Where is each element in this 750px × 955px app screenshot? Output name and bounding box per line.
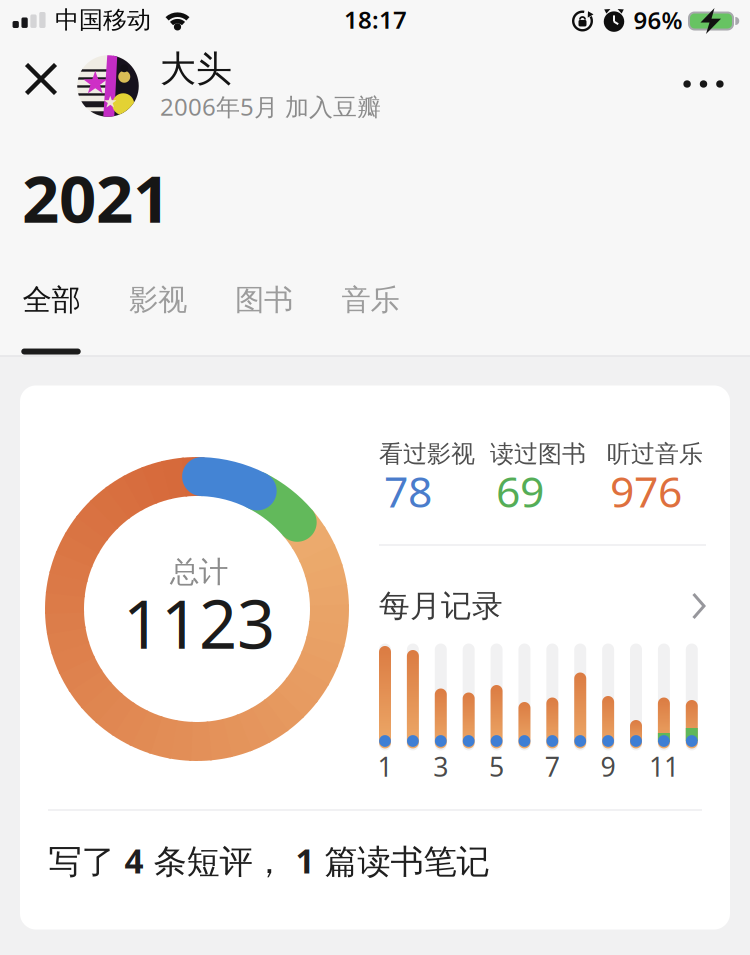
staticText: 读过图书	[490, 439, 586, 469]
button[interactable]: 影视	[123, 276, 193, 324]
button[interactable]	[17, 55, 64, 102]
staticText: 1	[377, 749, 392, 784]
staticText: 18:17	[344, 4, 407, 35]
staticText: 听过音乐	[607, 439, 703, 469]
staticText: 1123	[123, 579, 275, 667]
staticText: 2021	[22, 154, 170, 241]
button[interactable]: 音乐	[335, 276, 405, 324]
staticText: 图书	[235, 282, 293, 318]
staticText: 写了 4 条短评， 1 篇读书笔记	[48, 838, 489, 883]
staticText: 11	[649, 749, 679, 784]
staticText: 3	[433, 749, 448, 784]
staticText: 2006年5月 加入豆瓣	[160, 91, 381, 122]
staticText: 大头	[160, 47, 232, 91]
staticText: 总计	[170, 554, 228, 590]
button[interactable]: 每月记录	[379, 581, 706, 631]
staticText: 影视	[129, 282, 187, 318]
staticText: 全部	[22, 282, 80, 318]
staticText: 976	[610, 463, 682, 519]
staticText: 中国移动	[55, 5, 151, 35]
staticText: 看过影视	[379, 439, 475, 469]
staticText: 9	[601, 749, 616, 784]
button[interactable]	[77, 55, 139, 117]
button[interactable]: 全部	[16, 276, 86, 324]
staticText: 69	[496, 463, 544, 519]
staticText: 78	[384, 463, 432, 519]
staticText: 每月记录	[379, 587, 503, 625]
staticText: 7	[545, 749, 560, 784]
button[interactable]	[673, 70, 734, 98]
staticText: 5	[489, 749, 504, 784]
button[interactable]: 图书	[229, 276, 299, 324]
staticText: 96%	[633, 4, 682, 36]
staticText: 音乐	[341, 282, 399, 318]
